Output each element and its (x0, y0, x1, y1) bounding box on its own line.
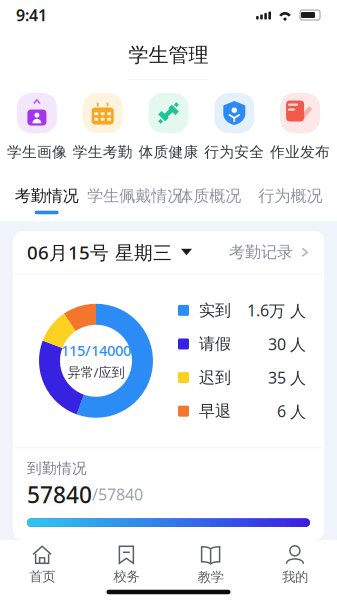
staticText: 35 人 (268, 367, 306, 388)
button[interactable]: 作业发布 (267, 93, 333, 161)
button[interactable]: 教学 (168, 539, 253, 585)
staticText: 校务 (113, 568, 139, 585)
staticText: 行为安全 (204, 143, 264, 161)
button[interactable]: 行为安全 (201, 93, 267, 161)
staticText: 实到 (199, 301, 231, 320)
staticText: 9:41 (16, 4, 47, 26)
staticText: 早退 (199, 401, 231, 421)
staticText: 异常/应到 (67, 363, 124, 381)
staticText: 30 人 (268, 333, 306, 355)
button[interactable]: 考勤记录 (229, 242, 310, 262)
button[interactable]: 校务 (84, 539, 168, 585)
staticText: 6 人 (277, 400, 306, 422)
staticText: 06月15号 星期三 (27, 240, 172, 265)
button[interactable]: 学生画像 (4, 93, 70, 161)
staticText: 首页 (29, 568, 55, 585)
staticText: 考勤情况 (15, 186, 79, 206)
staticText: 我的 (282, 569, 308, 585)
staticText: 作业发布 (270, 143, 330, 161)
staticText: 体质概况 (177, 186, 241, 206)
staticText: 考勤记录 (229, 242, 293, 262)
staticText: 学生考勤 (73, 143, 133, 161)
button[interactable]: 学生考勤 (70, 93, 136, 161)
button[interactable]: 体质健康 (136, 93, 201, 161)
staticText: 57840 (27, 479, 92, 509)
button[interactable]: 考勤情况 (6, 171, 87, 221)
staticText: 学生管理 (128, 43, 208, 67)
staticText: 迟到 (199, 368, 231, 387)
staticText: /57840 (92, 484, 143, 505)
staticText: 体质健康 (138, 143, 198, 161)
staticText: 115/14000 (61, 341, 131, 360)
staticText: 1.6万 人 (247, 300, 306, 321)
button[interactable]: 我的 (253, 539, 337, 585)
staticText: 学生佩戴情况 (87, 186, 183, 206)
button[interactable]: 学生佩戴情况 (87, 171, 168, 221)
staticText: 行为概况 (258, 186, 322, 206)
button[interactable]: 首页 (0, 539, 84, 585)
staticText: 请假 (199, 334, 231, 354)
staticText: 教学 (198, 569, 224, 585)
button[interactable]: 体质概况 (168, 171, 250, 221)
staticText: 到勤情况 (27, 459, 87, 477)
button[interactable]: 行为概况 (250, 171, 331, 221)
staticText: 学生画像 (7, 143, 67, 161)
